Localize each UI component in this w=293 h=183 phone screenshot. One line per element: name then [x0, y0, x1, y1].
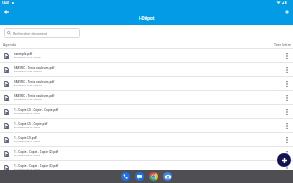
button[interactable]: exemple.pdf — [0, 49, 293, 63]
button[interactable]: Settings — [281, 5, 293, 18]
button[interactable]: More options — [280, 91, 293, 105]
staticText: FAB'RIC - Tests couleurs.pdf — [14, 94, 254, 98]
button[interactable]: 1 - Copie - Copie - Copie (3).pdf — [0, 161, 293, 175]
staticText: 01/10/2024 à 09:12 - 345 Ko — [14, 168, 254, 171]
staticText: 1 - Copie (2).pdf — [14, 136, 254, 140]
button[interactable]: FAB'RIC - Tests couleurs.pdf — [0, 63, 293, 77]
button[interactable]: 1 - Copie - Copie - Copie (2).pdf — [0, 147, 293, 161]
staticText: Tare lettre — [274, 42, 292, 47]
button[interactable]: FAB'RIC - Tests couleurs.pdf — [0, 91, 293, 105]
button[interactable]: 1 - Copie (2) - Copie.pdf — [0, 119, 293, 133]
staticText: Agenda — [3, 42, 16, 47]
button[interactable]: More options — [280, 147, 293, 161]
staticText: 04/10/2024 à 11:09 - 20.00 Ko — [14, 70, 254, 73]
staticText: 1 - Copie (2) - Copie - Copie.pdf — [14, 108, 254, 112]
staticText: 14:41 — [2, 1, 10, 5]
staticText: 04/10/2024 à 11:08 - 20.00 Ko — [14, 84, 254, 87]
staticText: FAB'RIC - Tests couleurs.pdf — [14, 66, 254, 70]
staticText: 01/10/2024 à 09:12 - 345 Ko — [14, 126, 254, 129]
button[interactable]: Rechercher document — [4, 28, 80, 38]
staticText: 06/10/2024 à 12:16 - 75.8 Ko — [14, 56, 254, 59]
staticText: i-Dépot — [139, 15, 155, 21]
button[interactable]: Back — [0, 5, 12, 18]
staticText: 01/10/2024 à 09:12 - 345 Ko — [14, 154, 254, 157]
staticText: 1 - Copie (2) - Copie.pdf — [14, 122, 254, 126]
button[interactable]: More options — [280, 63, 293, 77]
button[interactable]: More options — [280, 105, 293, 119]
button[interactable]: More options — [280, 77, 293, 91]
staticText: 04/10/2024 à 11:04 - 20.00 Ko — [14, 98, 254, 101]
button[interactable]: Phone — [121, 172, 130, 181]
button[interactable]: More options — [280, 161, 293, 175]
button[interactable]: More options — [280, 49, 293, 63]
button[interactable]: Messages — [135, 172, 144, 181]
staticText: FAB'RIC - Tests couleurs.pdf — [14, 80, 254, 84]
staticText: Rechercher document — [13, 31, 48, 35]
staticText: 1 - Copie - Copie - Copie (3).pdf — [14, 164, 254, 168]
button[interactable]: More options — [280, 119, 293, 133]
staticText: 01/10/2024 à 09:12 - 345 Ko — [14, 140, 254, 143]
button[interactable]: FAB'RIC - Tests couleurs.pdf — [0, 77, 293, 91]
staticText: exemple.pdf — [14, 52, 254, 56]
button[interactable]: More options — [280, 133, 293, 147]
button[interactable]: 1 - Copie (2).pdf — [0, 133, 293, 147]
button[interactable]: Chrome — [149, 172, 158, 181]
staticText: 1 - Copie - Copie - Copie (2).pdf — [14, 150, 254, 154]
staticText: 01/10/2024 à 09:12 - 345 Ko — [14, 112, 254, 115]
button[interactable]: Camera — [163, 172, 172, 181]
button[interactable]: Add — [277, 153, 291, 167]
button[interactable]: 1 - Copie (2) - Copie - Copie.pdf — [0, 105, 293, 119]
